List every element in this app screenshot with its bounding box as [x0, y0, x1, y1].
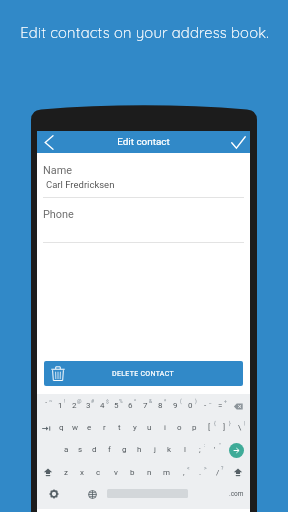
- staticText: ': [214, 445, 216, 454]
- button[interactable]: t: [112, 416, 127, 438]
- button[interactable]: Backspace: [227, 395, 249, 417]
- button[interactable]: g: [117, 438, 132, 460]
- button[interactable]: [: [202, 416, 217, 438]
- staticText: Edit contacts on your address book.: [20, 23, 269, 42]
- button[interactable]: p: [187, 416, 202, 438]
- button[interactable]: Shift: [226, 461, 250, 483]
- button[interactable]: 1: [53, 394, 67, 416]
- staticText: e: [87, 423, 92, 432]
- staticText: 3: [86, 401, 91, 410]
- staticText: r: [103, 423, 106, 432]
- button[interactable]: h: [132, 438, 147, 460]
- button[interactable]: o: [172, 416, 187, 438]
- button[interactable]: m: [158, 461, 175, 483]
- staticText: o: [177, 423, 182, 432]
- button[interactable]: n: [141, 461, 158, 483]
- button[interactable]: DELETE CONTACT: [44, 361, 243, 386]
- button[interactable]: 7: [138, 394, 153, 416]
- button[interactable]: e: [82, 416, 97, 438]
- button[interactable]: 8: [153, 394, 168, 416]
- staticText: a: [64, 445, 69, 454]
- button[interactable]: y: [127, 416, 142, 438]
- staticText: 5: [114, 401, 119, 410]
- staticText: 2: [72, 401, 77, 410]
- staticText: b: [130, 468, 135, 477]
- button[interactable]: 4: [95, 394, 109, 416]
- button[interactable]: f: [102, 438, 117, 460]
- staticText: 0: [188, 401, 193, 410]
- staticText: ^: [134, 398, 137, 404]
- staticText: }: [229, 420, 231, 426]
- button[interactable]: ]: [217, 416, 232, 438]
- staticText: Name: [43, 164, 73, 177]
- button[interactable]: b: [124, 461, 141, 483]
- button[interactable]: k: [162, 438, 177, 460]
- staticText: _: [209, 398, 212, 404]
- button[interactable]: w: [68, 416, 82, 438]
- button[interactable]: .com: [222, 483, 250, 505]
- staticText: +: [224, 398, 227, 404]
- button[interactable]: Save contact: [226, 131, 250, 153]
- button[interactable]: i: [157, 416, 172, 438]
- button[interactable]: q: [54, 416, 68, 438]
- button[interactable]: 0: [183, 394, 198, 416]
- staticText: =: [218, 401, 223, 410]
- button[interactable]: Enter: [222, 439, 250, 461]
- button[interactable]: j: [147, 438, 162, 460]
- staticText: k: [167, 445, 172, 454]
- staticText: [: [208, 423, 211, 432]
- button[interactable]: 9: [168, 394, 183, 416]
- button[interactable]: 3: [81, 394, 95, 416]
- button[interactable]: 6: [123, 394, 138, 416]
- button[interactable]: Back: [37, 131, 61, 153]
- button[interactable]: r: [97, 416, 112, 438]
- button[interactable]: 2: [67, 394, 81, 416]
- button[interactable]: d: [87, 438, 102, 460]
- button[interactable]: z: [58, 461, 74, 483]
- staticText: Phone: [43, 208, 74, 221]
- button[interactable]: /: [209, 461, 226, 483]
- button[interactable]: ,: [175, 461, 192, 483]
- staticText: ?: [221, 465, 224, 471]
- button[interactable]: Tab: [38, 417, 54, 439]
- button[interactable]: .: [192, 461, 209, 483]
- staticText: 7: [143, 401, 148, 410]
- button[interactable]: ;: [192, 438, 207, 460]
- button[interactable]: l: [177, 438, 192, 460]
- staticText: <: [187, 465, 190, 471]
- button[interactable]: Shift: [38, 461, 58, 483]
- staticText: `: [45, 401, 48, 410]
- button[interactable]: s: [73, 438, 87, 460]
- staticText: .com: [229, 490, 244, 498]
- button[interactable]: 5: [109, 394, 123, 416]
- button[interactable]: ': [207, 438, 222, 460]
- staticText: u: [147, 423, 152, 432]
- button[interactable]: =: [213, 394, 228, 416]
- button[interactable]: v: [107, 461, 124, 483]
- staticText: 6: [128, 401, 133, 410]
- button[interactable]: -: [198, 394, 213, 416]
- staticText: 1: [58, 401, 63, 410]
- staticText: %: [119, 398, 123, 404]
- button[interactable]: u: [142, 416, 157, 438]
- staticText: j: [154, 445, 156, 454]
- staticText: v: [114, 468, 118, 477]
- staticText: (: [180, 398, 182, 404]
- staticText: |: [244, 420, 246, 426]
- staticText: w: [72, 423, 79, 432]
- staticText: .: [199, 468, 202, 477]
- staticText: >: [204, 465, 207, 471]
- button[interactable]: c: [90, 461, 107, 483]
- button[interactable]: x: [74, 461, 90, 483]
- staticText: 8: [158, 401, 163, 410]
- button[interactable]: a: [59, 438, 73, 460]
- staticText: *: [164, 398, 167, 404]
- staticText: y: [133, 423, 137, 432]
- button[interactable]: Settings: [44, 483, 64, 505]
- staticText: {: [214, 420, 216, 426]
- button[interactable]: `: [39, 394, 53, 416]
- button[interactable]: Change language: [82, 483, 102, 505]
- button[interactable]: \: [232, 416, 247, 438]
- staticText: /: [216, 468, 220, 477]
